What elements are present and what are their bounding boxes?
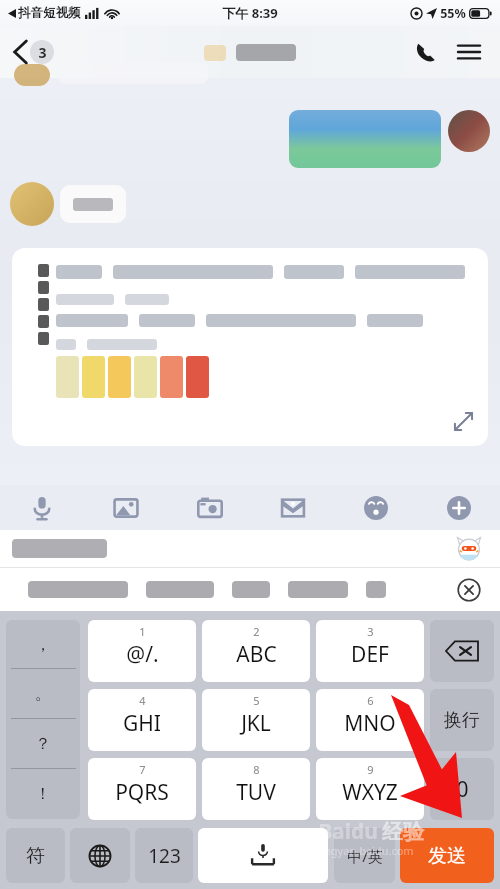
staticText: PQRS bbox=[115, 778, 169, 807]
button[interactable] bbox=[60, 185, 126, 223]
staticText: jingyan.baidu.com bbox=[318, 843, 414, 858]
button[interactable]: Camera bbox=[168, 485, 251, 530]
button[interactable]: Switch language bbox=[70, 828, 130, 883]
button[interactable]: Backspace bbox=[430, 620, 494, 682]
staticText: 7 bbox=[139, 762, 146, 777]
staticText: 123 bbox=[148, 843, 181, 869]
button[interactable]: 7 bbox=[88, 758, 196, 820]
staticText: 4 bbox=[139, 693, 146, 708]
staticText: ！ bbox=[35, 784, 51, 804]
button[interactable]: ， bbox=[6, 620, 80, 669]
staticText: 抖音短视频 bbox=[18, 5, 81, 21]
staticText: Baidu bbox=[318, 817, 378, 846]
button[interactable]: 中/英 bbox=[334, 828, 395, 883]
staticText: DEF bbox=[351, 640, 389, 669]
button[interactable]: 符 bbox=[6, 828, 65, 883]
button[interactable] bbox=[28, 568, 438, 611]
staticText: 55% bbox=[440, 5, 466, 22]
staticText: GHI bbox=[123, 709, 161, 738]
button[interactable]: 2 bbox=[202, 620, 310, 682]
button[interactable]: 0 bbox=[430, 758, 494, 820]
button[interactable] bbox=[289, 110, 441, 168]
staticText: 。 bbox=[35, 684, 51, 704]
button[interactable]: Close bbox=[438, 568, 500, 611]
staticText: 换行 bbox=[444, 709, 480, 732]
button[interactable]: More bbox=[417, 485, 500, 530]
staticText: 下午 8:39 bbox=[222, 4, 278, 22]
staticText: 3 bbox=[38, 43, 47, 62]
staticText: 0 bbox=[456, 775, 469, 804]
staticText: 5 bbox=[253, 693, 260, 708]
button[interactable]: Gallery bbox=[84, 485, 168, 530]
button[interactable]: 9 bbox=[316, 758, 424, 820]
button[interactable]: 123 bbox=[135, 828, 193, 883]
button[interactable]: Menu bbox=[452, 35, 486, 69]
button[interactable]: 。 bbox=[6, 669, 80, 719]
staticText: MNO bbox=[344, 709, 396, 738]
button[interactable]: 6 bbox=[316, 689, 424, 751]
button[interactable]: Voice bbox=[0, 485, 84, 530]
button[interactable]: Envelope bbox=[251, 485, 334, 530]
button[interactable]: Sticker bbox=[438, 530, 500, 567]
staticText: 2 bbox=[253, 624, 260, 639]
button[interactable]: ！ bbox=[6, 769, 80, 819]
button[interactable] bbox=[10, 182, 54, 226]
staticText: 中/英 bbox=[347, 846, 383, 866]
staticText: 经验 bbox=[382, 819, 424, 845]
button[interactable]: Expand bbox=[12, 248, 488, 446]
button[interactable]: 3 bbox=[316, 620, 424, 682]
staticText: 1 bbox=[139, 624, 146, 639]
button[interactable] bbox=[448, 110, 490, 152]
staticText: ， bbox=[35, 635, 51, 655]
staticText: 9 bbox=[367, 762, 374, 777]
button[interactable]: 5 bbox=[202, 689, 310, 751]
button[interactable] bbox=[0, 530, 438, 567]
staticText: TUV bbox=[236, 778, 276, 807]
button[interactable]: 8 bbox=[202, 758, 310, 820]
staticText: 发送 bbox=[428, 844, 466, 868]
staticText: 符 bbox=[26, 844, 45, 868]
staticText: ABC bbox=[236, 640, 277, 669]
staticText: JKL bbox=[241, 709, 271, 738]
button[interactable]: 换行 bbox=[430, 689, 494, 751]
button[interactable]: Call bbox=[408, 35, 442, 69]
staticText: @/. bbox=[126, 640, 159, 669]
staticText: ？ bbox=[35, 734, 51, 754]
button[interactable]: 4 bbox=[88, 689, 196, 751]
staticText: WXYZ bbox=[342, 778, 398, 807]
button[interactable]: 发送 bbox=[400, 828, 494, 883]
button[interactable]: Expand bbox=[450, 408, 476, 434]
staticText: 8 bbox=[253, 762, 260, 777]
staticText: 6 bbox=[367, 693, 374, 708]
button[interactable]: Space, voice input bbox=[198, 828, 328, 883]
button[interactable]: ？ bbox=[6, 719, 80, 769]
button[interactable]: 1 bbox=[88, 620, 196, 682]
button[interactable]: Back, 3 unread bbox=[10, 36, 58, 68]
staticText: 3 bbox=[367, 624, 374, 639]
button[interactable]: Emoji bbox=[334, 485, 417, 530]
